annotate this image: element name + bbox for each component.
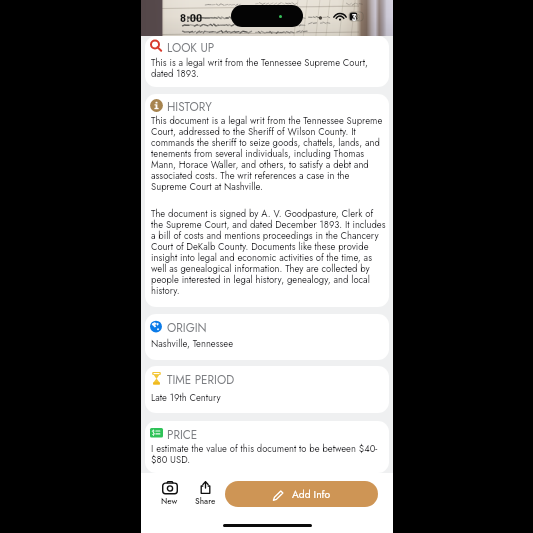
staticText: TIME PERIOD <box>167 371 235 388</box>
button[interactable]: Add Info <box>225 481 378 507</box>
staticText: ORIGIN <box>167 319 207 336</box>
staticText: LOOK UP <box>167 39 215 56</box>
staticText: Share <box>195 495 216 507</box>
button[interactable]: PRICE <box>145 421 389 473</box>
button[interactable]: Share <box>190 481 220 511</box>
staticText: Add Info <box>292 487 331 502</box>
staticText: 3 <box>352 12 357 21</box>
staticText: HISTORY <box>167 98 212 115</box>
button[interactable]: LOOK UP <box>145 36 389 87</box>
button[interactable]: HISTORY <box>145 94 389 307</box>
other: New <box>162 481 178 494</box>
staticText: PRICE <box>167 426 198 443</box>
staticText: New <box>161 495 178 507</box>
staticText: 8:00 <box>180 10 203 25</box>
staticText: This is a legal writ from the Tennessee … <box>151 58 386 80</box>
other: Share <box>200 481 211 494</box>
staticText: Late 19th Century <box>151 393 221 404</box>
button[interactable]: TIME PERIOD <box>145 366 389 413</box>
staticText: This document is a legal writ from the T… <box>151 116 386 193</box>
staticText: Nashville, Tennessee <box>151 339 234 350</box>
staticText: 9 <box>356 12 361 21</box>
button[interactable]: ORIGIN <box>145 314 389 360</box>
staticText: The document is signed by A. V. Goodpast… <box>151 209 386 297</box>
button[interactable]: New <box>154 481 184 511</box>
staticText: I estimate the value of this document to… <box>151 444 386 466</box>
